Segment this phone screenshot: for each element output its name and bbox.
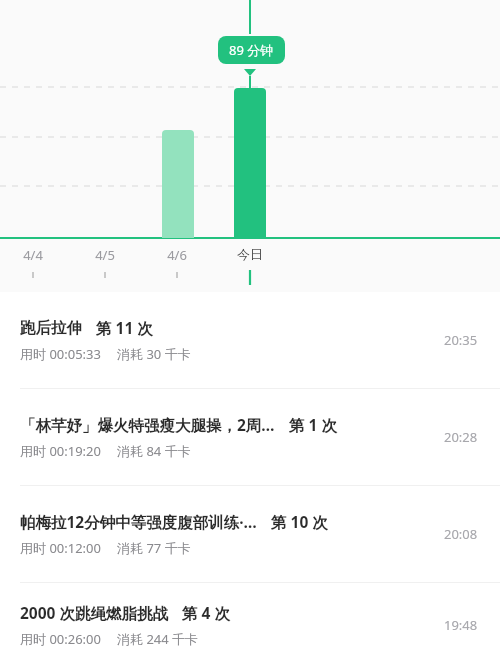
staticText: 用时 00:26:00 (20, 630, 101, 648)
staticText: 4/5 (75, 246, 135, 264)
staticText: 第 11 次 (96, 317, 153, 338)
staticText: 89 分钟 (229, 41, 274, 59)
button[interactable]: 帕梅拉12分钟中等强度腹部训练·… (0, 486, 500, 582)
staticText: 消耗 84 千卡 (117, 442, 191, 460)
staticText: 第 10 次 (271, 511, 328, 532)
staticText: 20:08 (444, 525, 478, 543)
staticText: 帕梅拉12分钟中等强度腹部训练·… (20, 511, 257, 532)
staticText: 第 1 次 (289, 414, 337, 435)
staticText: 4/6 (147, 246, 207, 264)
staticText: 用时 00:12:00 (20, 539, 101, 557)
button[interactable]: 跑后拉伸 (0, 292, 500, 388)
staticText: 消耗 244 千卡 (117, 630, 199, 648)
staticText: 用时 00:05:33 (20, 345, 101, 363)
staticText: 消耗 30 千卡 (117, 345, 191, 363)
staticText: 20:28 (444, 428, 478, 446)
button[interactable]: 2000 次跳绳燃脂挑战 (0, 583, 500, 666)
button[interactable]: 89 分钟 (218, 36, 285, 64)
staticText: 今日 (220, 246, 280, 262)
staticText: 跑后拉伸 (20, 318, 82, 338)
staticText: 19:48 (444, 616, 478, 634)
staticText: 用时 00:19:20 (20, 442, 101, 460)
staticText: 「林芊妤」爆火特强瘦大腿操，2周… (20, 414, 275, 435)
staticText: 消耗 77 千卡 (117, 539, 191, 557)
staticText: 20:35 (444, 331, 478, 349)
staticText: 4/4 (3, 246, 63, 264)
staticText: 第 4 次 (182, 602, 230, 623)
button[interactable]: 「林芊妤」爆火特强瘦大腿操，2周… (0, 389, 500, 485)
staticText: 2000 次跳绳燃脂挑战 (20, 602, 168, 623)
